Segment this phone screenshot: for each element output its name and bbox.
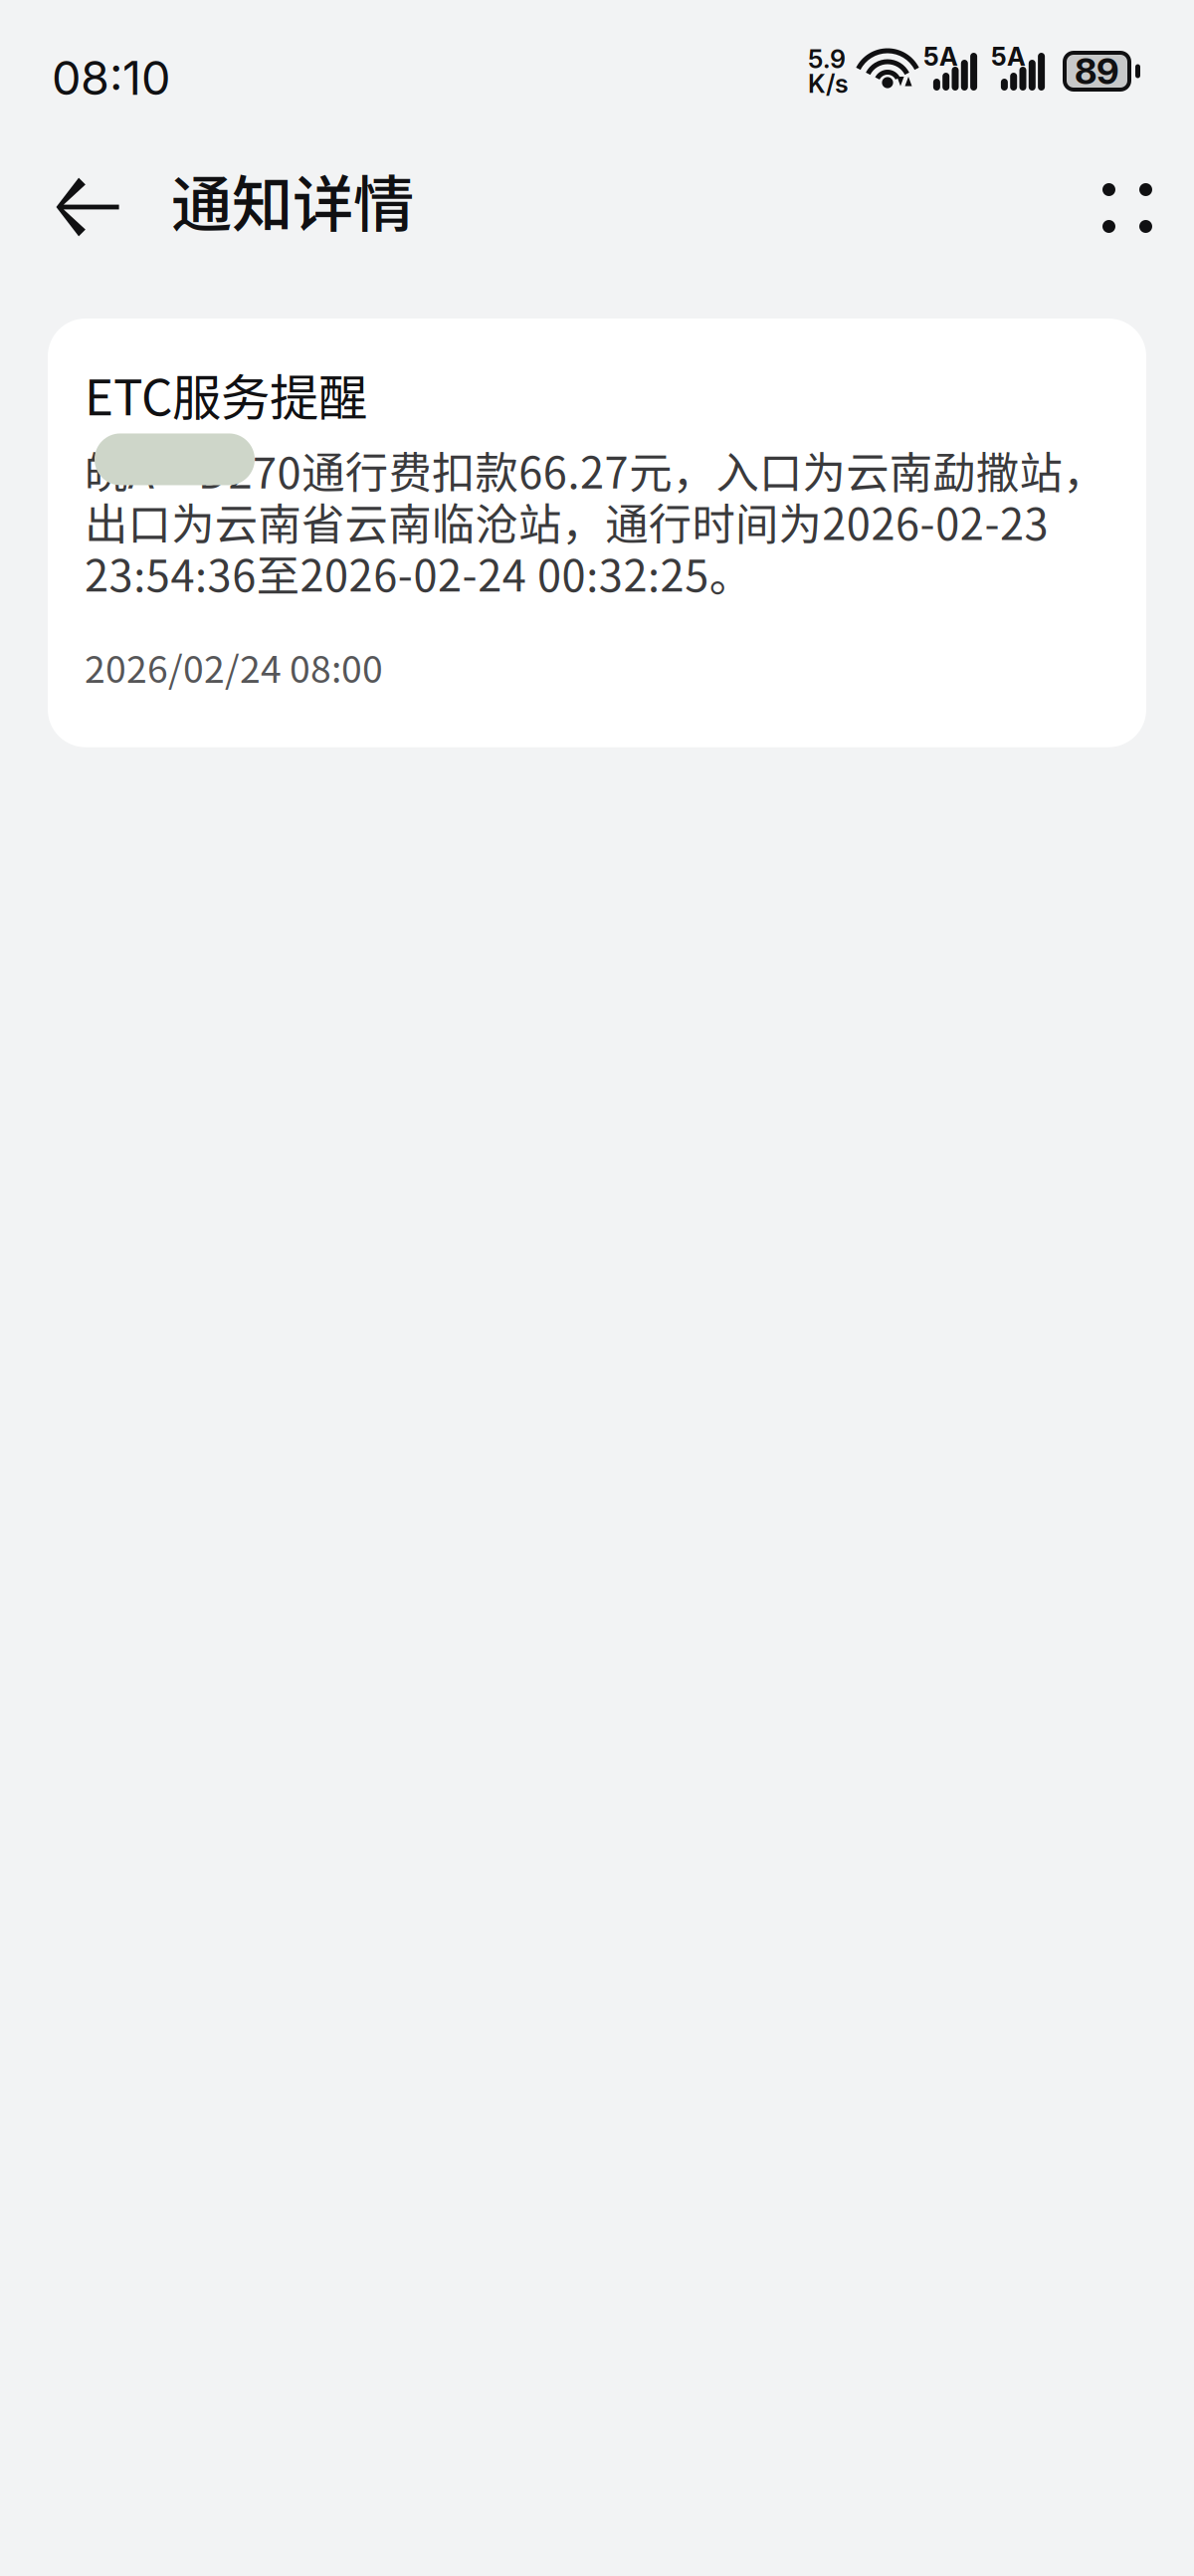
button[interactable]: 通知详情 bbox=[171, 145, 414, 255]
staticText: ETC服务提醒 bbox=[85, 358, 367, 429]
staticText: 08:10 bbox=[52, 50, 170, 106]
staticText: 89 bbox=[1075, 49, 1119, 93]
staticText: 通知详情 bbox=[171, 156, 414, 244]
button[interactable]: More options bbox=[1072, 153, 1183, 263]
staticText: 皖A·D270通行费扣款66.27元，入口为云南勐撒站， 出口为云南省云南临沧站… bbox=[85, 438, 1106, 604]
button[interactable]: ETC服务提醒 bbox=[48, 319, 1146, 747]
staticText: 5A bbox=[923, 41, 958, 72]
button[interactable]: Back bbox=[32, 153, 143, 263]
staticText: 2026/02/24 08:00 bbox=[85, 640, 383, 694]
staticText: K/s bbox=[808, 68, 849, 99]
staticText: 5.9 bbox=[808, 44, 846, 74]
staticText: 5A bbox=[991, 41, 1026, 72]
